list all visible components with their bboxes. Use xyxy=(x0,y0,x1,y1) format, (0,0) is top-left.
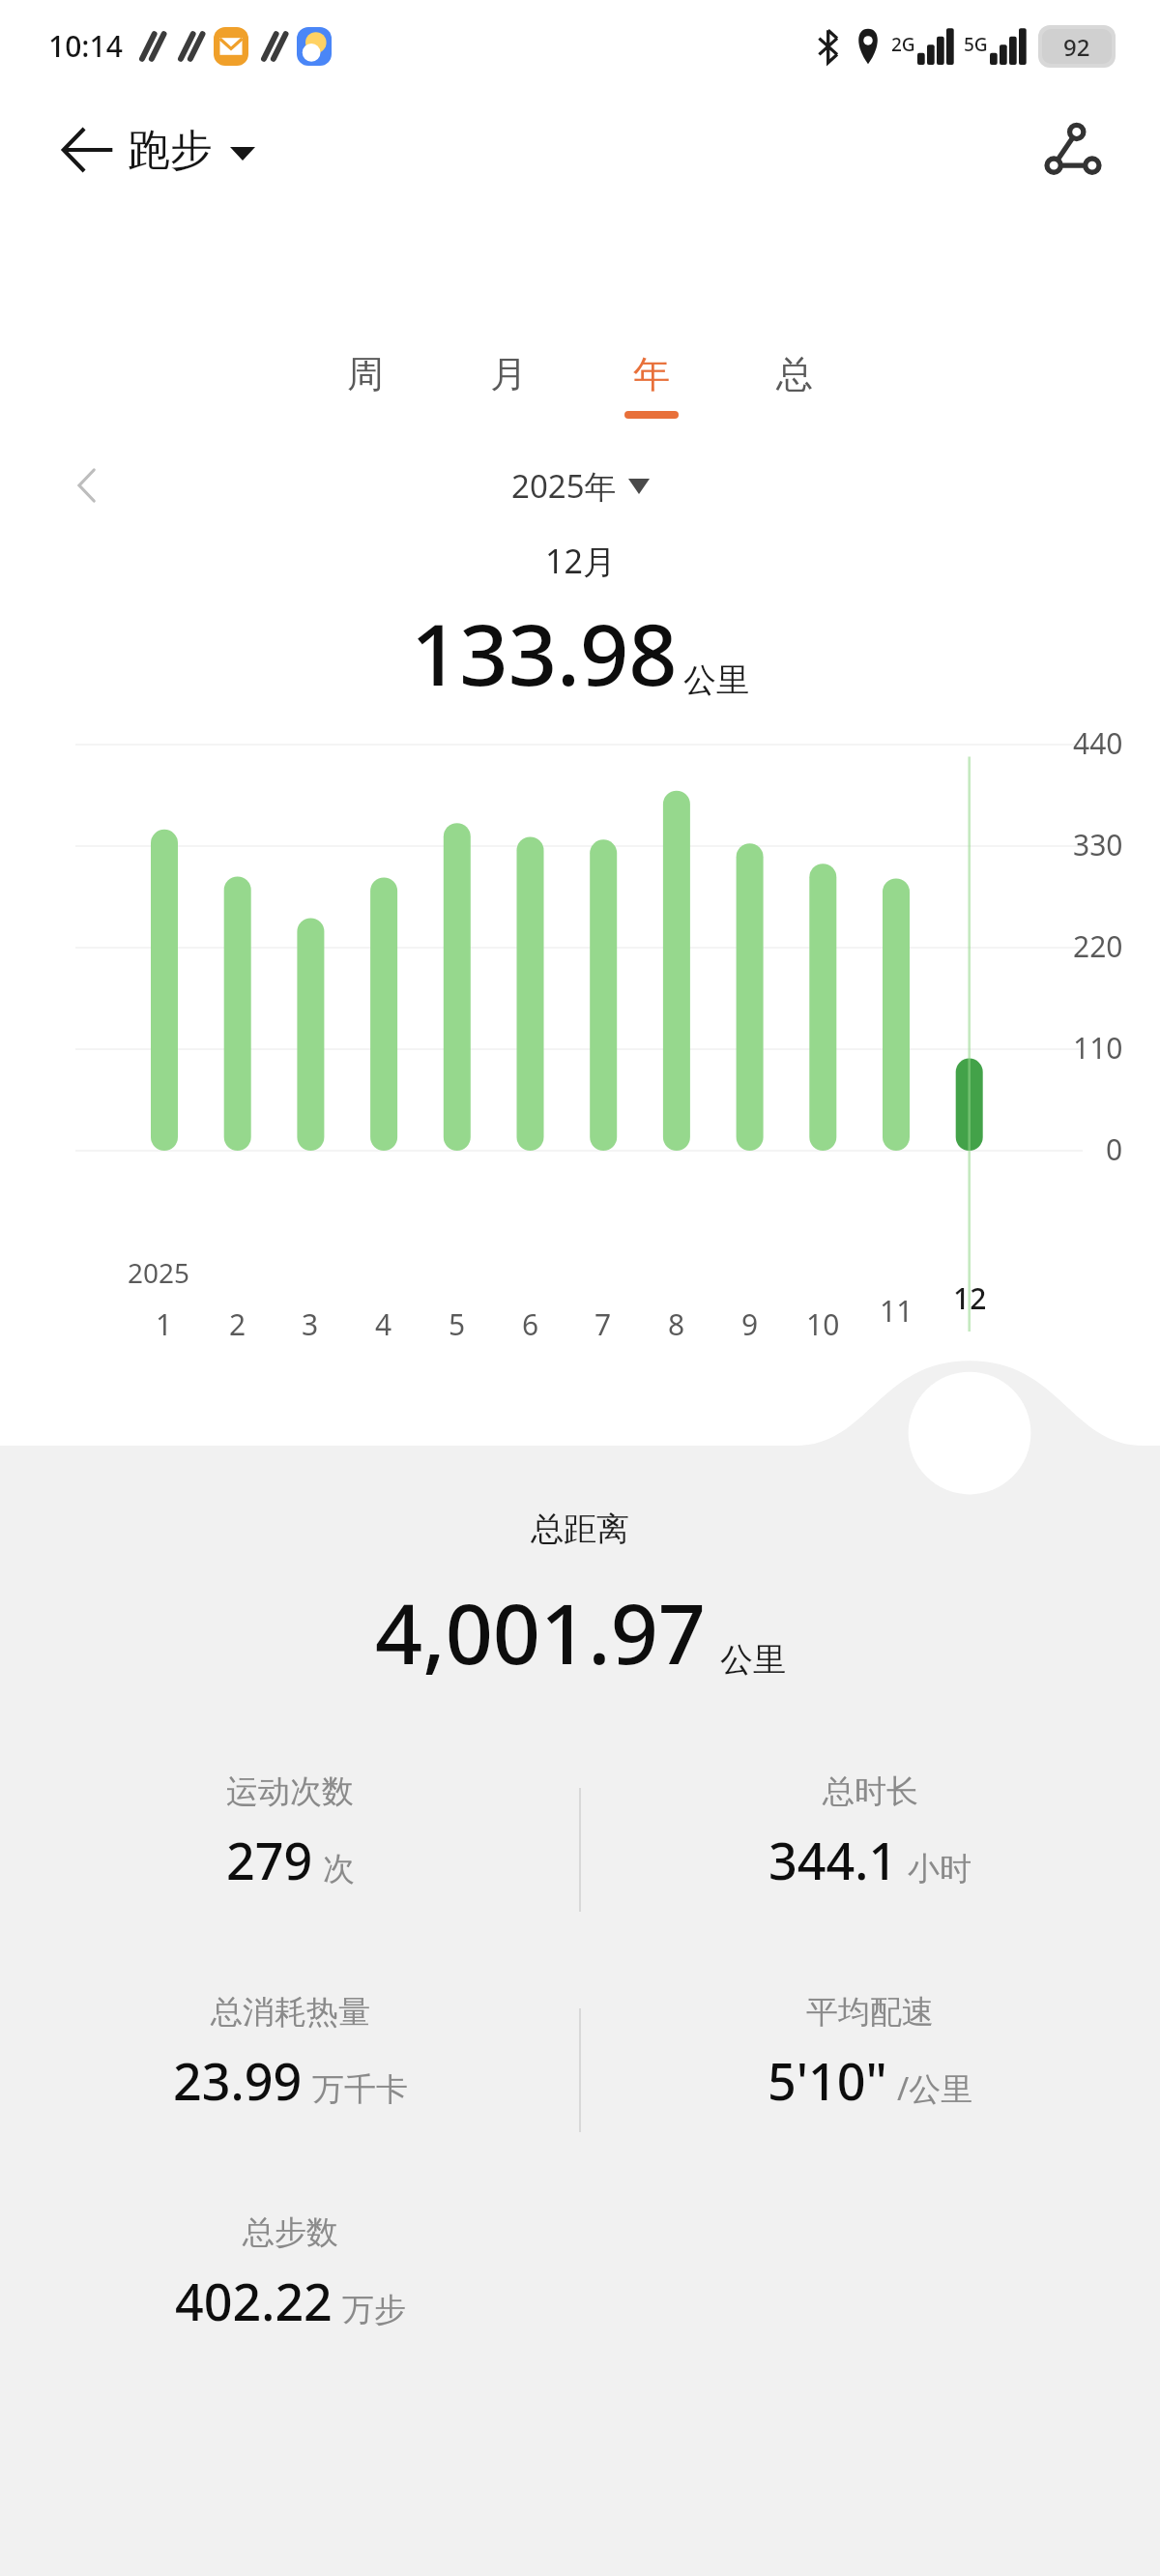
staticText: 2G xyxy=(891,32,915,57)
staticText: 5G xyxy=(964,32,988,57)
staticText: 0 xyxy=(1106,1129,1123,1169)
staticText: 月 xyxy=(490,351,527,397)
staticText: 12月 xyxy=(545,539,616,583)
staticText: 5'10" xyxy=(768,2046,887,2115)
staticText: 平均配速 xyxy=(806,1992,934,2033)
staticText: 2 xyxy=(229,1304,246,1344)
staticText: 92 xyxy=(1063,31,1090,63)
button[interactable]: 总时长 xyxy=(580,1758,1160,1942)
staticText: 4,001.97 xyxy=(375,1575,707,1688)
staticText: 总步数 xyxy=(243,2212,338,2253)
staticText: 12 xyxy=(953,1278,987,1318)
staticText: 公里 xyxy=(683,659,749,701)
button[interactable]: 周 xyxy=(294,343,437,426)
staticText: 次 xyxy=(323,1849,355,1889)
staticText: 133.98 xyxy=(411,595,678,711)
staticText: 周 xyxy=(347,351,384,397)
staticText: 2025年 xyxy=(511,464,617,508)
staticText: 11 xyxy=(880,1291,913,1331)
staticText: 1 xyxy=(156,1304,173,1344)
button[interactable]: 总消耗热量 xyxy=(0,1978,580,2162)
staticText: 23.99 xyxy=(173,2046,303,2115)
staticText: 4 xyxy=(375,1304,392,1344)
button[interactable]: Previous year xyxy=(48,448,126,523)
staticText: 3 xyxy=(302,1304,319,1344)
staticText: 10:14 xyxy=(48,26,123,66)
staticText: 8 xyxy=(668,1304,685,1344)
staticText: 万步 xyxy=(342,2290,406,2330)
staticText: 运动次数 xyxy=(226,1771,354,1812)
staticText: 9 xyxy=(741,1304,759,1344)
staticText: 330 xyxy=(1073,825,1123,864)
staticText: 跑步 xyxy=(128,124,213,177)
staticText: 402.22 xyxy=(175,2267,333,2335)
button[interactable]: Share xyxy=(1025,102,1121,198)
staticText: 总 xyxy=(776,351,813,397)
staticText: 5 xyxy=(449,1304,466,1344)
staticText: 6 xyxy=(522,1304,539,1344)
staticText: /公里 xyxy=(897,2066,973,2110)
staticText: 344.1 xyxy=(768,1826,898,1894)
staticText: 年 xyxy=(633,351,670,397)
button[interactable]: 2025年 xyxy=(511,464,650,508)
staticText: 总时长 xyxy=(823,1771,918,1812)
staticText: 2025 xyxy=(128,1254,190,1291)
button[interactable]: 总步数 xyxy=(0,2199,580,2383)
staticText: 110 xyxy=(1073,1028,1123,1068)
staticText: 440 xyxy=(1073,723,1123,763)
staticText: 万千卡 xyxy=(312,2069,408,2110)
button[interactable]: 跑步 xyxy=(128,124,255,177)
staticText: 总距离 xyxy=(531,1508,629,1550)
button[interactable]: 月 xyxy=(437,343,580,426)
button[interactable]: 总 xyxy=(723,343,866,426)
staticText: 总消耗热量 xyxy=(211,1992,370,2033)
staticText: 公里 xyxy=(720,1639,786,1681)
staticText: 220 xyxy=(1073,926,1123,966)
button[interactable]: Back xyxy=(41,103,133,196)
staticText: 小时 xyxy=(908,1849,971,1889)
staticText: 7 xyxy=(594,1304,612,1344)
staticText: 279 xyxy=(226,1826,313,1894)
button[interactable]: 运动次数 xyxy=(0,1758,580,1942)
button[interactable]: 平均配速 xyxy=(580,1978,1160,2162)
staticText: 10 xyxy=(806,1304,840,1344)
button[interactable]: 年 xyxy=(580,343,723,426)
